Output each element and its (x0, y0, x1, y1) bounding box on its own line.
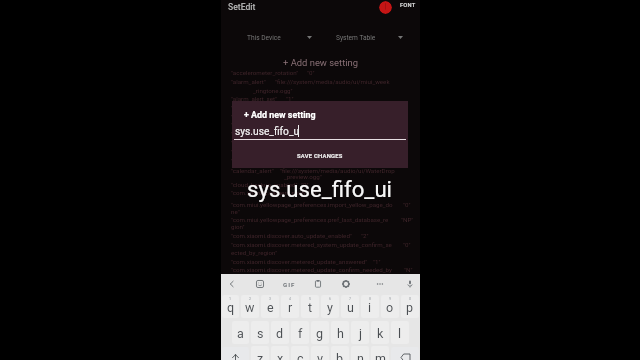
button[interactable]: n (351, 346, 369, 360)
button[interactable]: 6 (321, 295, 339, 318)
button[interactable]: c (291, 346, 309, 360)
staticText: ne" (231, 208, 240, 215)
staticText: "calendar_alert" "file:///system/media/a… (231, 167, 395, 174)
button[interactable]: 8 (361, 295, 379, 318)
staticText: "N" (404, 266, 413, 273)
button[interactable]: Settings (340, 278, 352, 290)
button[interactable]: s (251, 321, 269, 344)
button[interactable]: + Add new setting (221, 56, 420, 68)
staticText: t (308, 300, 313, 315)
button[interactable]: Backspace (391, 347, 419, 360)
button[interactable] (221, 265, 420, 275)
button[interactable]: l (391, 321, 409, 344)
button[interactable] (221, 165, 420, 180)
staticText: "0" (403, 241, 411, 248)
staticText: 4 (289, 297, 292, 301)
button[interactable]: v (311, 346, 329, 360)
button[interactable] (221, 147, 420, 156)
button[interactable]: m (371, 346, 389, 360)
button[interactable]: 0 (401, 295, 419, 318)
staticText: b (336, 351, 344, 360)
button[interactable] (221, 77, 420, 94)
staticText: "0" (311, 189, 319, 196)
staticText: + Add new setting (283, 57, 358, 68)
button[interactable]: Stickers (254, 278, 266, 290)
button[interactable]: Voice input (404, 278, 416, 290)
staticText: "alarm_alert" "file:///system/media/audi… (231, 78, 390, 85)
staticText: w (245, 300, 255, 315)
staticText: _ringtone.ogg" (253, 87, 293, 94)
staticText: 5 (309, 297, 312, 301)
staticText: 9 (389, 297, 392, 301)
button[interactable]: Clipboard (312, 278, 324, 290)
staticText: x (277, 351, 284, 360)
staticText: sys.use_fifo_u (235, 126, 300, 138)
button[interactable] (221, 68, 420, 77)
button[interactable] (221, 129, 420, 138)
button[interactable] (221, 215, 420, 231)
button[interactable]: k (371, 321, 389, 344)
staticText: "auto_time" (231, 139, 263, 146)
staticText: "com.xiaomi.discover.metered_update_answ… (231, 258, 368, 265)
button[interactable] (221, 231, 420, 240)
button[interactable]: 7 (341, 295, 359, 318)
button[interactable] (221, 120, 420, 129)
staticText: "1" (373, 258, 381, 265)
button[interactable]: a (232, 321, 249, 344)
button[interactable]: This Device (221, 28, 321, 47)
button[interactable]: x (271, 346, 289, 360)
button[interactable]: System Table (321, 28, 421, 47)
button[interactable]: 5 (301, 295, 319, 318)
staticText: System Table (336, 34, 376, 42)
button[interactable] (221, 199, 420, 215)
button[interactable]: z (251, 346, 269, 360)
button[interactable]: h (331, 321, 349, 344)
button[interactable]: g (311, 321, 329, 344)
staticText: d (276, 326, 284, 341)
staticText: m (375, 351, 386, 360)
button[interactable]: Shift (222, 347, 249, 360)
staticText: "com.xiaomi.discover.metered_system_upda… (231, 241, 392, 248)
staticText: e (267, 300, 274, 315)
button[interactable] (221, 138, 420, 147)
staticText: "backup_enabled" (231, 157, 280, 164)
staticText: "a94e9f21c4b3e7d1" (277, 121, 335, 128)
button[interactable]: FONT (400, 2, 416, 9)
staticText: "com.android.camera.push" (231, 189, 307, 196)
button[interactable] (221, 188, 420, 200)
staticText: ected_by_region" (231, 249, 278, 256)
button[interactable]: Back (226, 278, 238, 290)
staticText: SetEdit (228, 2, 256, 12)
staticText: j (359, 326, 362, 341)
button[interactable] (221, 257, 420, 265)
button[interactable]: 1 (222, 295, 239, 318)
staticText: v (317, 351, 324, 360)
staticText: f (298, 326, 303, 341)
button[interactable]: 9 (381, 295, 399, 318)
staticText: _preview.ogg" (284, 173, 322, 180)
staticText: "android_id" (231, 121, 264, 128)
button[interactable]: f (291, 321, 309, 344)
button[interactable]: 2 (241, 295, 259, 318)
button[interactable] (221, 240, 420, 257)
button[interactable]: j (351, 321, 369, 344)
staticText: FONT (400, 2, 416, 9)
button[interactable]: GIF (280, 278, 298, 290)
button[interactable] (221, 103, 420, 112)
staticText: "com.xiaomi.discover.auto_update_enabled… (231, 232, 352, 239)
button[interactable]: d (271, 321, 289, 344)
button[interactable]: 3 (261, 295, 279, 318)
staticText: r (288, 300, 293, 315)
button[interactable]: b (331, 346, 349, 360)
button[interactable] (221, 94, 420, 103)
button[interactable]: App logo (379, 1, 392, 14)
button[interactable] (221, 111, 420, 120)
button[interactable]: More options (374, 278, 386, 290)
button[interactable] (221, 155, 420, 165)
staticText: "com.miui.yellowpage_preferences.import_… (231, 201, 393, 208)
button[interactable]: SAVE CHANGES (232, 145, 408, 167)
button[interactable]: 4 (281, 295, 299, 318)
button[interactable] (221, 180, 420, 188)
staticText: 8 (369, 297, 372, 301)
